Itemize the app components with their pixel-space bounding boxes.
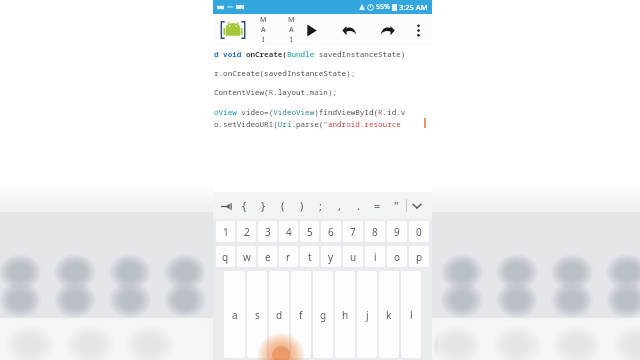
- staticText: I: [262, 35, 265, 45]
- staticText: =: [374, 198, 381, 213]
- staticText: 2: [244, 225, 250, 239]
- staticText: r: [286, 250, 291, 264]
- staticText: ContentView(R.layout.main);: [214, 87, 338, 97]
- button[interactable]: a: [224, 271, 245, 358]
- button[interactable]: Undo: [336, 17, 362, 43]
- button[interactable]: 3: [258, 221, 277, 242]
- button[interactable]: 0: [409, 221, 429, 242]
- staticText: g: [320, 308, 327, 322]
- button[interactable]: 5: [300, 221, 319, 242]
- staticText: d: [276, 308, 283, 322]
- staticText: 55%: [376, 2, 390, 12]
- staticText: 0: [416, 225, 422, 239]
- button[interactable]: q: [216, 246, 235, 267]
- staticText: {: [242, 198, 247, 213]
- staticText: A: [261, 25, 266, 35]
- button[interactable]: ;: [311, 192, 330, 219]
- staticText: .: [357, 198, 360, 213]
- staticText: r.onCreate(savedInstanceState);: [214, 68, 356, 78]
- staticText: A: [289, 25, 294, 35]
- button[interactable]: e: [258, 246, 277, 267]
- button[interactable]: 8: [365, 221, 385, 242]
- button[interactable]: t: [300, 246, 319, 267]
- staticText: 3:25 AM: [399, 2, 428, 12]
- button[interactable]: g: [313, 271, 333, 358]
- staticText: i: [374, 250, 377, 264]
- button[interactable]: M: [284, 15, 298, 45]
- button[interactable]: r: [279, 246, 298, 267]
- staticText: }: [261, 198, 266, 213]
- staticText: e: [265, 250, 271, 264]
- staticText: I: [290, 35, 293, 45]
- button[interactable]: App icon: [216, 16, 250, 44]
- button[interactable]: s: [247, 271, 267, 358]
- button[interactable]: (: [273, 192, 292, 219]
- button[interactable]: More options: [408, 17, 429, 43]
- button[interactable]: y: [321, 246, 341, 267]
- button[interactable]: =: [368, 192, 387, 219]
- staticText: M: [288, 15, 295, 25]
- staticText: o.setVideoURI(Uri.parse("android.resourc…: [214, 119, 401, 129]
- staticText: (: [281, 198, 285, 213]
- staticText: o: [394, 250, 401, 264]
- staticText: k: [386, 308, 392, 322]
- staticText: 3: [265, 225, 271, 239]
- staticText: ;: [319, 198, 322, 213]
- staticText: 6: [328, 225, 334, 239]
- button[interactable]: ,: [330, 192, 349, 219]
- button[interactable]: 1: [216, 221, 235, 242]
- staticText: f: [299, 308, 303, 322]
- button[interactable]: h: [335, 271, 355, 358]
- button[interactable]: 6: [321, 221, 341, 242]
- button[interactable]: p: [409, 246, 429, 267]
- button[interactable]: d: [269, 271, 289, 358]
- staticText: M: [260, 15, 267, 25]
- button[interactable]: k: [379, 271, 399, 358]
- button[interactable]: u: [343, 246, 363, 267]
- button[interactable]: Tab: [218, 198, 234, 214]
- button[interactable]: 7: [343, 221, 363, 242]
- button[interactable]: 4: [279, 221, 298, 242]
- staticText: ): [300, 198, 304, 213]
- staticText: 4: [286, 225, 292, 239]
- staticText: d void onCreate(Bundle savedInstanceStat…: [214, 49, 406, 59]
- staticText: q: [222, 250, 229, 264]
- button[interactable]: M: [256, 15, 270, 45]
- button[interactable]: j: [357, 271, 377, 358]
- button[interactable]: Hide suggestions: [407, 192, 427, 219]
- button[interactable]: i: [365, 246, 385, 267]
- staticText: 9: [394, 225, 400, 239]
- staticText: u: [350, 250, 357, 264]
- staticText: l: [410, 308, 413, 322]
- staticText: p: [416, 250, 423, 264]
- staticText: j: [366, 308, 369, 322]
- staticText: a: [232, 308, 238, 322]
- button[interactable]: o: [387, 246, 407, 267]
- button[interactable]: ): [292, 192, 311, 219]
- staticText: 5: [307, 225, 313, 239]
- button[interactable]: f: [291, 271, 311, 358]
- staticText: 7: [350, 225, 356, 239]
- staticText: y: [328, 250, 334, 264]
- staticText: 1: [223, 225, 229, 239]
- button[interactable]: 9: [387, 221, 407, 242]
- staticText: h: [342, 308, 349, 322]
- staticText: 8: [372, 225, 378, 239]
- button[interactable]: }: [254, 192, 273, 219]
- button[interactable]: .: [349, 192, 368, 219]
- button[interactable]: l: [401, 271, 421, 358]
- staticText: ": [394, 198, 399, 213]
- staticText: ,: [338, 198, 341, 213]
- button[interactable]: Run: [298, 17, 324, 43]
- staticText: t: [308, 250, 312, 264]
- button[interactable]: Redo: [374, 17, 400, 43]
- button[interactable]: {: [234, 192, 254, 219]
- staticText: w: [243, 250, 251, 264]
- button[interactable]: w: [237, 246, 256, 267]
- button[interactable]: ": [387, 192, 406, 219]
- button[interactable]: 2: [237, 221, 256, 242]
- staticText: oView video=(VideoView)findViewById(R.id…: [214, 107, 406, 117]
- staticText: s: [255, 308, 260, 322]
